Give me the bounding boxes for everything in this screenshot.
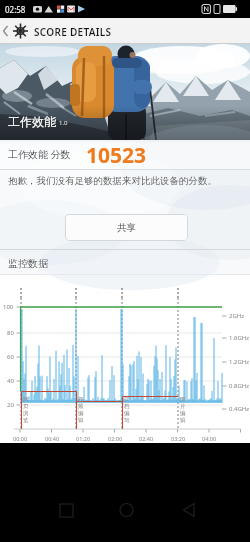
staticText: 1.6GHz (229, 334, 250, 342)
staticText: 0.8GHz (229, 382, 250, 390)
staticText: SCORE DETAILS (34, 25, 112, 39)
staticText: 01:20 (76, 435, 91, 442)
staticText: 页 (23, 403, 29, 410)
staticText: 2GHz (229, 312, 245, 320)
button[interactable] (170, 491, 208, 529)
staticText: 频 (78, 403, 84, 410)
staticText: 80 (7, 329, 14, 337)
button[interactable] (107, 491, 145, 529)
staticText: 1.0 (59, 119, 68, 127)
staticText: 02:58 (5, 4, 26, 15)
staticText: 片 (180, 403, 186, 410)
button[interactable] (48, 491, 86, 529)
staticText: 辑 (78, 417, 84, 424)
staticText: 0.4GHz (229, 405, 250, 413)
staticText: 20 (7, 401, 14, 409)
staticText: 档 (124, 403, 130, 410)
staticText: 10523 (86, 141, 147, 170)
staticText: 1.2GHz (229, 358, 250, 366)
staticText: 工作效能 (8, 114, 56, 129)
staticText: 00:40 (45, 435, 60, 442)
staticText: 共享 (117, 222, 136, 234)
staticText: 网 (23, 396, 29, 403)
staticText: 编 (124, 410, 130, 417)
staticText: 编 (180, 410, 186, 417)
staticText: 写 (124, 417, 130, 424)
staticText: 视 (78, 396, 84, 403)
staticText: 览 (23, 417, 29, 424)
button[interactable]: 工作效能 (0, 44, 250, 140)
button[interactable]: 共享 (65, 214, 188, 241)
button[interactable] (0, 18, 32, 44)
staticText: 40 (7, 377, 14, 385)
staticText: 浏 (23, 410, 29, 417)
staticText: 100 (3, 303, 14, 311)
staticText: 04:00 (202, 435, 217, 442)
staticText: 60 (7, 353, 14, 361)
staticText: 02:00 (108, 435, 123, 442)
staticText: 工作效能 分数 (8, 147, 71, 161)
staticText: 监控数据 (8, 257, 48, 270)
staticText: 辑 (180, 417, 186, 424)
staticText: 图 (180, 396, 186, 403)
staticText: 文 (124, 396, 130, 403)
staticText: 00:00 (13, 435, 28, 442)
staticText: 03:20 (171, 435, 186, 442)
staticText: 抱歉，我们没有足够的数据来对比此设备的分数。 (8, 175, 217, 187)
staticText: 02:40 (139, 435, 154, 442)
staticText: 编 (78, 410, 84, 417)
